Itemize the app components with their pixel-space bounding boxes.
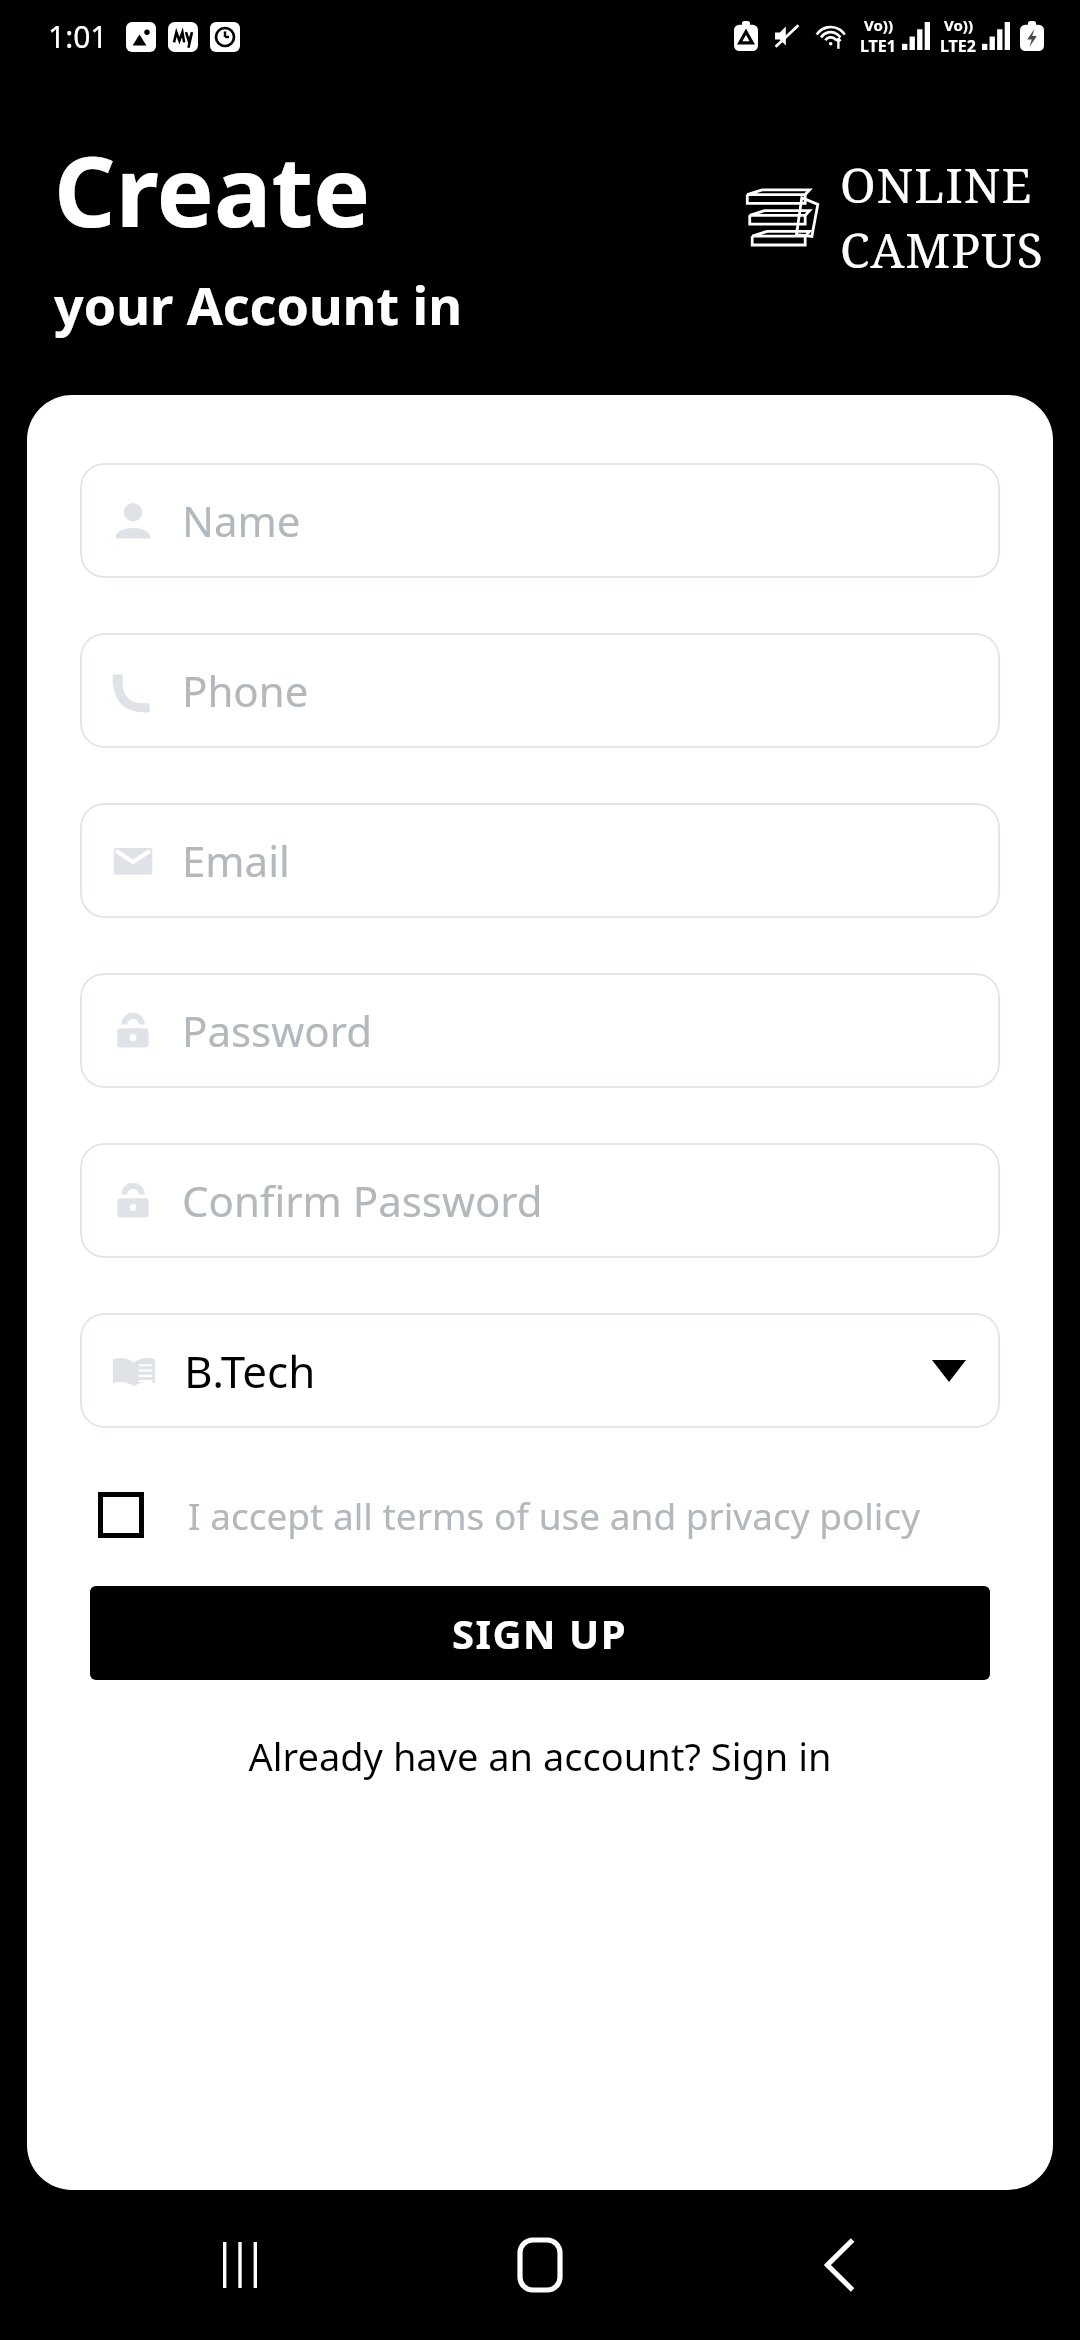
button[interactable]: Password (80, 973, 1000, 1088)
staticText: SIGN UP (452, 1606, 628, 1660)
staticText: I accept all terms of use and privacy po… (188, 1490, 921, 1540)
staticText: 1:01 (48, 16, 108, 57)
staticText: LTE1 (860, 35, 896, 57)
staticText: your Account in (54, 269, 462, 340)
staticText: Email (182, 832, 290, 889)
button[interactable]: Name (80, 463, 1000, 578)
button[interactable]: SIGN UP (90, 1586, 990, 1680)
staticText: Name (182, 492, 301, 549)
button[interactable]: Confirm Password (80, 1143, 1000, 1258)
staticText: ONLINE (840, 152, 1033, 217)
staticText: Password (182, 1002, 372, 1059)
button[interactable]: Already have an account? Sign in (27, 1730, 1053, 1782)
staticText: LTE2 (940, 35, 976, 57)
staticText: Vo)) (944, 15, 973, 35)
button[interactable]: Email (80, 803, 1000, 918)
staticText: Create (54, 124, 371, 255)
button[interactable]: Back (780, 2205, 900, 2325)
button[interactable]: Home (480, 2205, 600, 2325)
staticText: Phone (182, 662, 309, 719)
staticText: Confirm Password (182, 1172, 543, 1229)
staticText: Vo)) (864, 15, 893, 35)
button[interactable]: Phone (80, 633, 1000, 748)
button[interactable]: B.Tech (80, 1313, 1000, 1428)
button[interactable]: Recent apps (180, 2205, 300, 2325)
staticText: CAMPUS (840, 217, 1044, 282)
staticText: B.Tech (184, 1341, 316, 1401)
button[interactable]: I accept all terms of use and privacy po… (80, 1490, 1000, 1540)
